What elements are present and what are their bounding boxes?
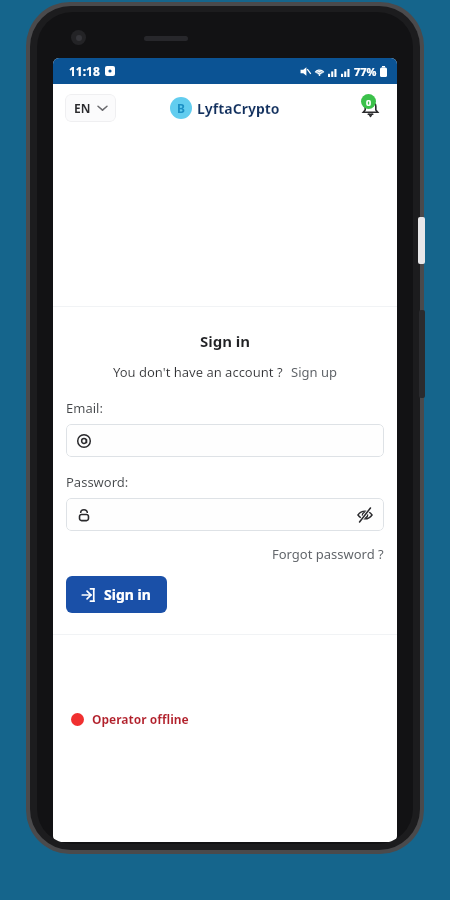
staticText: Sign up bbox=[291, 363, 337, 381]
staticText: 11:18 bbox=[69, 63, 100, 79]
staticText: Password: bbox=[66, 473, 129, 491]
button[interactable]: Show password bbox=[66, 498, 384, 531]
staticText: 0 bbox=[366, 96, 372, 108]
staticText: 77% bbox=[354, 64, 377, 79]
button[interactable]: Show password bbox=[355, 505, 375, 525]
button[interactable] bbox=[66, 424, 384, 457]
button[interactable]: EN bbox=[65, 94, 116, 122]
staticText: EN bbox=[74, 100, 91, 116]
button[interactable]: Sign in bbox=[66, 576, 167, 613]
staticText: Sign in bbox=[66, 331, 384, 351]
staticText: B bbox=[177, 100, 185, 116]
staticText: Operator offline bbox=[92, 711, 189, 727]
button[interactable]: Notifications bbox=[355, 93, 385, 123]
staticText: Email: bbox=[66, 399, 103, 417]
staticText: Sign in bbox=[104, 585, 151, 604]
staticText: LyftaCrypto bbox=[197, 99, 280, 118]
button[interactable]: B bbox=[170, 97, 280, 119]
button[interactable]: Operator offline bbox=[71, 711, 397, 727]
button[interactable]: Sign up bbox=[291, 363, 337, 381]
staticText: Forgot password ? bbox=[272, 545, 384, 563]
button[interactable]: Forgot password ? bbox=[272, 545, 384, 563]
staticText: You don't have an account ? bbox=[113, 363, 283, 381]
